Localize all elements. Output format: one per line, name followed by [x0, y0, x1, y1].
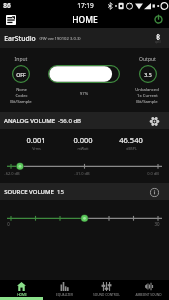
button[interactable]: Power	[150, 11, 167, 28]
staticText: Bit/Sample	[10, 99, 32, 105]
staticText: SOUND CONTROL	[93, 293, 120, 297]
staticText: SOURCE VOLUME	[4, 188, 54, 196]
button[interactable]: Bluetooth	[150, 34, 166, 44]
staticText: EarStudio	[4, 34, 36, 43]
staticText: 1x Current	[137, 93, 158, 99]
staticText: 0.000	[73, 135, 93, 145]
button[interactable]: SOUND CONTROL	[85, 280, 127, 300]
staticText: (FW ver.190102 3.0.3)	[39, 36, 81, 42]
staticText: 15	[57, 188, 64, 196]
button[interactable]: Menu	[2, 11, 19, 28]
button[interactable]: Info	[147, 185, 161, 199]
staticText: HOME	[72, 14, 98, 26]
button[interactable]: HOME	[0, 280, 43, 300]
staticText: 30	[154, 221, 160, 227]
button[interactable]: AMBIENT SOUND	[127, 280, 169, 300]
staticText: 97%	[48, 91, 120, 97]
staticText: Bit/Sample	[136, 99, 158, 105]
staticText: 0	[7, 221, 10, 227]
staticText: Output	[138, 56, 157, 63]
staticText: 3.5	[144, 71, 152, 78]
staticText: mWatt	[77, 146, 89, 151]
staticText: -31.0 dB	[74, 171, 90, 176]
staticText: OFF	[16, 71, 26, 78]
staticText: dBSPL	[126, 146, 137, 151]
button[interactable]: Source volume slider	[0, 210, 169, 228]
staticText: AMBIENT SOUND	[135, 293, 162, 297]
staticText: Vrms	[32, 146, 41, 151]
staticText: 86	[3, 1, 11, 10]
staticText: Codec	[15, 93, 28, 99]
staticText: -62.0 dB	[4, 171, 20, 176]
button[interactable]: EQUALIZER	[43, 280, 85, 300]
staticText: Unbalanced	[135, 87, 159, 93]
staticText: Input	[12, 56, 30, 63]
button[interactable]: Settings	[147, 114, 161, 128]
staticText: 0.0 dB	[147, 171, 159, 176]
staticText: 46.540	[119, 135, 143, 145]
staticText: 0.001	[26, 135, 46, 145]
staticText: None	[16, 87, 27, 93]
staticText: EQUALIZER	[56, 293, 73, 297]
staticText: HOME	[17, 293, 27, 297]
staticText: -56.0 dB	[58, 117, 81, 125]
staticText: aptX	[155, 40, 161, 44]
staticText: 17:19	[77, 1, 94, 10]
button[interactable]: Analog volume slider	[0, 158, 169, 176]
staticText: ANALOG VOLUME	[4, 117, 55, 125]
